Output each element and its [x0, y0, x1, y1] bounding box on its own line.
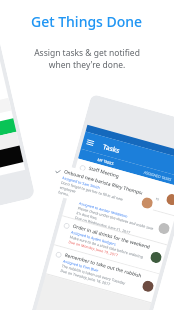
staticText: Coffees are now $4.00, teas $4.00, smoot… — [84, 176, 160, 206]
staticText: The rubbish is taken out every Tuesday — [61, 263, 126, 286]
staticText: Onboard new barista Riley Thompson — [63, 168, 143, 197]
staticText: Order in all drinks for the weekend — [72, 223, 151, 251]
button[interactable]: Menu — [86, 138, 94, 147]
staticText: Don't forget to get her to fill in all n… — [58, 180, 140, 216]
button[interactable]: Remember to take out the rubbish — [46, 245, 159, 303]
staticText: ASSIGNED TASKS — [143, 170, 172, 182]
staticText: Due on Monday, June 26, 2017 — [83, 186, 134, 205]
button[interactable]: Order in all drinks for the weekend — [54, 216, 167, 274]
staticText: Assigned to Ayden Rodgers — [71, 229, 117, 247]
staticText: Assigned to Amber Middleton — [79, 200, 129, 219]
staticText: Make sure to do a stock take before orde… — [69, 234, 144, 259]
staticText: Assigned to Sam Smith — [62, 175, 101, 190]
staticText: Due on Tuesday, June 18, 2017 — [60, 268, 111, 287]
staticText: Staff Meeting — [88, 165, 120, 180]
staticText: Tidy Store Room — [80, 194, 118, 211]
staticText: Assigned to Finn Blair — [62, 258, 99, 273]
staticText: Due on Wednesday, June 21, 2017 — [75, 215, 132, 235]
staticText: Assign tasks & get notified when they're… — [34, 47, 140, 71]
button[interactable]: Tidy Store Room — [62, 187, 174, 245]
staticText: Remember to take out the rubbish — [64, 252, 143, 280]
button[interactable]: ASSIGNED TASKS — [130, 163, 174, 188]
staticText: Tasks — [102, 142, 121, 155]
button[interactable]: MY TASKS — [78, 149, 133, 173]
staticText: Get Things Done — [31, 12, 143, 31]
button[interactable]: Onboard new barista Riley Thompson — [46, 162, 158, 222]
staticText: Please check under the shelves and make … — [76, 205, 155, 236]
staticText: Due on Monday, June 19, 2017 — [68, 239, 119, 258]
staticText: MY TASKS — [97, 157, 115, 166]
staticText: Assigned to Annie Carroll — [87, 172, 129, 188]
button[interactable]: Staff Meeting — [70, 158, 174, 216]
